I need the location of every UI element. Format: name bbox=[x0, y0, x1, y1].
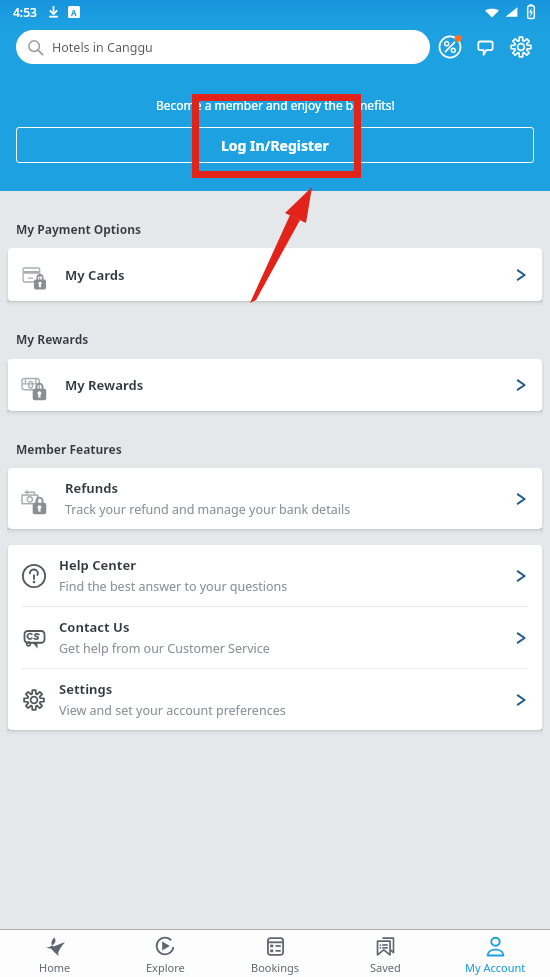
staticText: 4:53 bbox=[13, 4, 37, 20]
staticText: My Account bbox=[465, 960, 526, 975]
button[interactable]: My Cards bbox=[8, 248, 542, 301]
staticText: Log In/Register bbox=[221, 136, 329, 155]
staticText: Get help from our Customer Service bbox=[59, 640, 270, 657]
button[interactable]: Messages bbox=[470, 32, 500, 62]
staticText: View and set your account preferences bbox=[59, 702, 286, 719]
staticText: Settings bbox=[59, 680, 113, 698]
staticText: Explore bbox=[146, 960, 185, 975]
button[interactable]: My Rewards bbox=[8, 359, 542, 411]
button[interactable]: Contact Us bbox=[8, 607, 542, 668]
staticText: A bbox=[71, 7, 77, 18]
button[interactable]: Saved bbox=[330, 930, 440, 977]
staticText: My Rewards bbox=[16, 331, 89, 347]
button[interactable]: Log In/Register bbox=[16, 127, 534, 163]
button[interactable]: Promos bbox=[435, 32, 465, 62]
button[interactable]: My Account bbox=[440, 930, 550, 977]
staticText: Track your refund and manage your bank d… bbox=[65, 501, 351, 518]
staticText: My Rewards bbox=[65, 376, 144, 394]
button[interactable]: Home bbox=[0, 930, 110, 977]
staticText: Refunds bbox=[65, 479, 118, 497]
staticText: Bookings bbox=[251, 960, 300, 975]
staticText: My Cards bbox=[65, 266, 125, 284]
staticText: My Payment Options bbox=[16, 221, 141, 237]
button[interactable]: Bookings bbox=[220, 930, 330, 977]
staticText: Contact Us bbox=[59, 618, 130, 636]
staticText: Member Features bbox=[16, 441, 122, 457]
staticText: Find the best answer to your questions bbox=[59, 578, 288, 595]
button[interactable]: Refunds bbox=[8, 468, 542, 529]
staticText: Hotels in Canggu bbox=[52, 39, 153, 56]
staticText: Help Center bbox=[59, 556, 136, 574]
button[interactable]: Explore bbox=[110, 930, 220, 977]
button[interactable]: Settings bbox=[8, 669, 542, 730]
staticText: Saved bbox=[370, 960, 401, 975]
button[interactable]: Hotels in Canggu bbox=[16, 30, 430, 64]
staticText: Become a member and enjoy the benefits! bbox=[156, 97, 395, 113]
staticText: Home bbox=[39, 960, 71, 975]
button[interactable]: Settings bbox=[506, 32, 536, 62]
button[interactable]: Help Center bbox=[8, 545, 542, 606]
